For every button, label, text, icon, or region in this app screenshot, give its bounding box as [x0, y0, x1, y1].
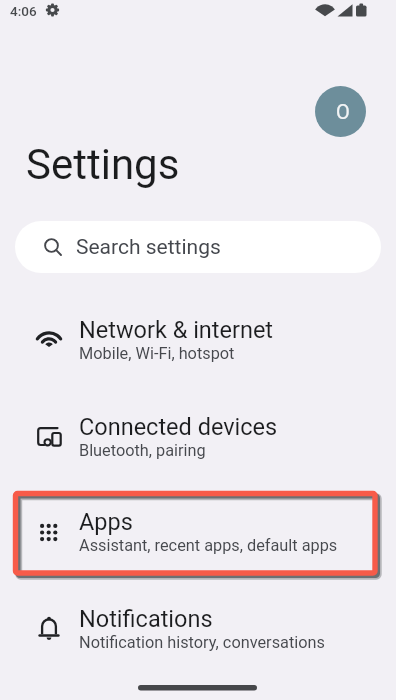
staticText: Bluetooth, pairing — [79, 441, 206, 460]
staticText: O — [336, 100, 350, 123]
staticText: Search settings — [76, 235, 221, 260]
button[interactable]: Network & internet — [0, 291, 396, 387]
staticText: Apps — [79, 508, 133, 536]
button[interactable]: O — [315, 86, 366, 137]
staticText: Mobile, Wi-Fi, hotspot — [79, 344, 235, 363]
staticText: Assistant, recent apps, default apps — [79, 536, 338, 555]
staticText: 4:06 — [10, 3, 37, 19]
button[interactable]: Notifications — [0, 580, 396, 676]
staticText: Settings — [26, 140, 180, 189]
staticText: Network & internet — [79, 316, 274, 344]
staticText: Connected devices — [79, 413, 278, 441]
staticText: Notification history, conversations — [79, 633, 325, 652]
button[interactable]: Apps — [0, 483, 396, 579]
staticText: Notifications — [79, 605, 213, 633]
button[interactable]: Connected devices — [0, 388, 396, 484]
button[interactable]: Search settings — [15, 221, 381, 273]
